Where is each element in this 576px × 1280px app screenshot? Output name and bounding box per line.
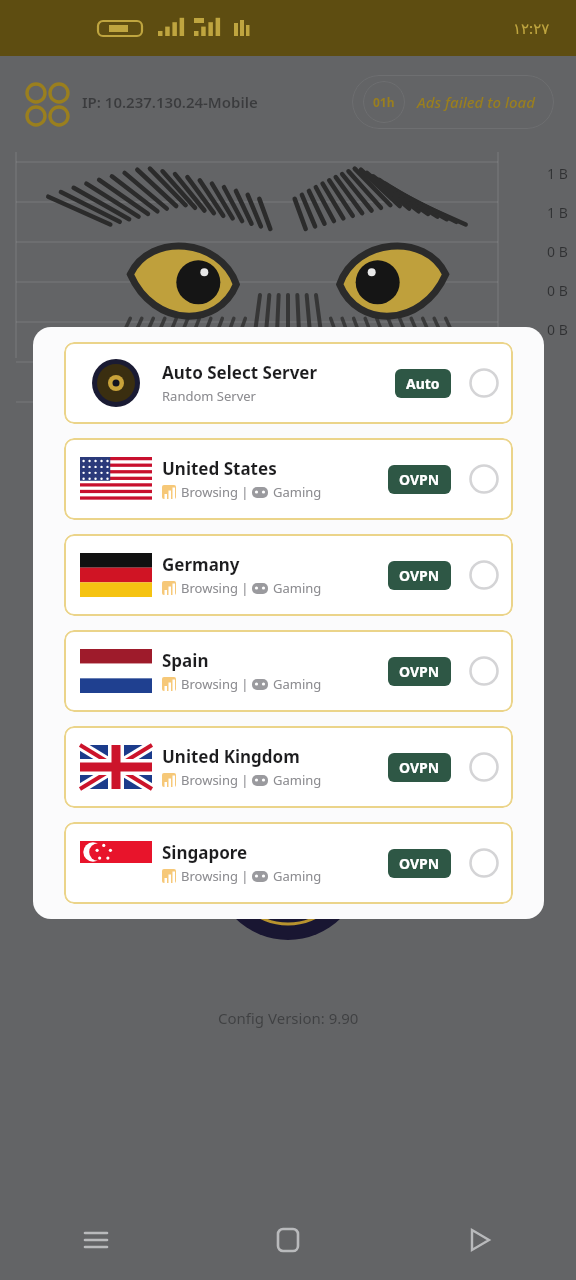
staticText: Auto Select Server [162, 361, 318, 384]
staticText: OVPN [399, 470, 440, 489]
button[interactable]: Select Spain [467, 654, 501, 688]
staticText: United States [162, 457, 277, 480]
staticText: OVPN [399, 758, 440, 777]
button[interactable]: Select Germany [467, 558, 501, 592]
button[interactable]: United Kingdom [64, 726, 513, 808]
button[interactable]: Spain [64, 630, 513, 712]
button[interactable]: Home [192, 1200, 384, 1280]
staticText: Gaming [273, 675, 322, 693]
button[interactable]: 01h [352, 75, 554, 129]
staticText: 1 B [547, 203, 568, 222]
staticText: Gaming [273, 483, 322, 501]
staticText: Browsing | [181, 771, 252, 789]
staticText: Browsing | [181, 867, 252, 885]
staticText: IP: 10.237.130.24-Mobile [82, 92, 258, 112]
staticText: OVPN [399, 566, 440, 585]
button[interactable]: Select United States [467, 462, 501, 496]
staticText: 0 B [547, 281, 568, 300]
staticText: Germany [162, 553, 240, 576]
staticText: United Kingdom [162, 745, 300, 768]
staticText: Random Server [162, 387, 256, 405]
staticText: 0 B [547, 320, 568, 339]
button[interactable]: Select Auto Select Server [467, 366, 501, 400]
button[interactable]: Apps [22, 79, 68, 125]
staticText: Auto [406, 374, 440, 393]
staticText: 1 B [547, 164, 568, 183]
staticText: Gaming [273, 579, 322, 597]
staticText: Gaming [273, 867, 322, 885]
button[interactable]: Singapore [64, 822, 513, 904]
button[interactable]: Select Singapore [467, 846, 501, 880]
button[interactable]: Germany [64, 534, 513, 616]
button[interactable]: Select United Kingdom [467, 750, 501, 784]
staticText: Browsing | [181, 483, 252, 501]
staticText: OVPN [399, 854, 440, 873]
staticText: OVPN [399, 662, 440, 681]
staticText: ۱۲:۲۷ [513, 18, 550, 38]
staticText: Browsing | [181, 579, 252, 597]
button[interactable]: Recents [0, 1200, 192, 1280]
staticText: Ads failed to load [417, 92, 535, 112]
staticText: Browsing | [181, 675, 252, 693]
staticText: Config Version: 9.90 [218, 1008, 359, 1028]
staticText: Gaming [273, 771, 322, 789]
staticText: Spain [162, 649, 209, 672]
button[interactable]: Auto Select Server [64, 342, 513, 424]
staticText: 0 B [547, 242, 568, 261]
staticText: Singapore [162, 841, 248, 864]
button[interactable]: Back [384, 1200, 576, 1280]
staticText: 01h [373, 94, 395, 110]
button[interactable]: United States [64, 438, 513, 520]
